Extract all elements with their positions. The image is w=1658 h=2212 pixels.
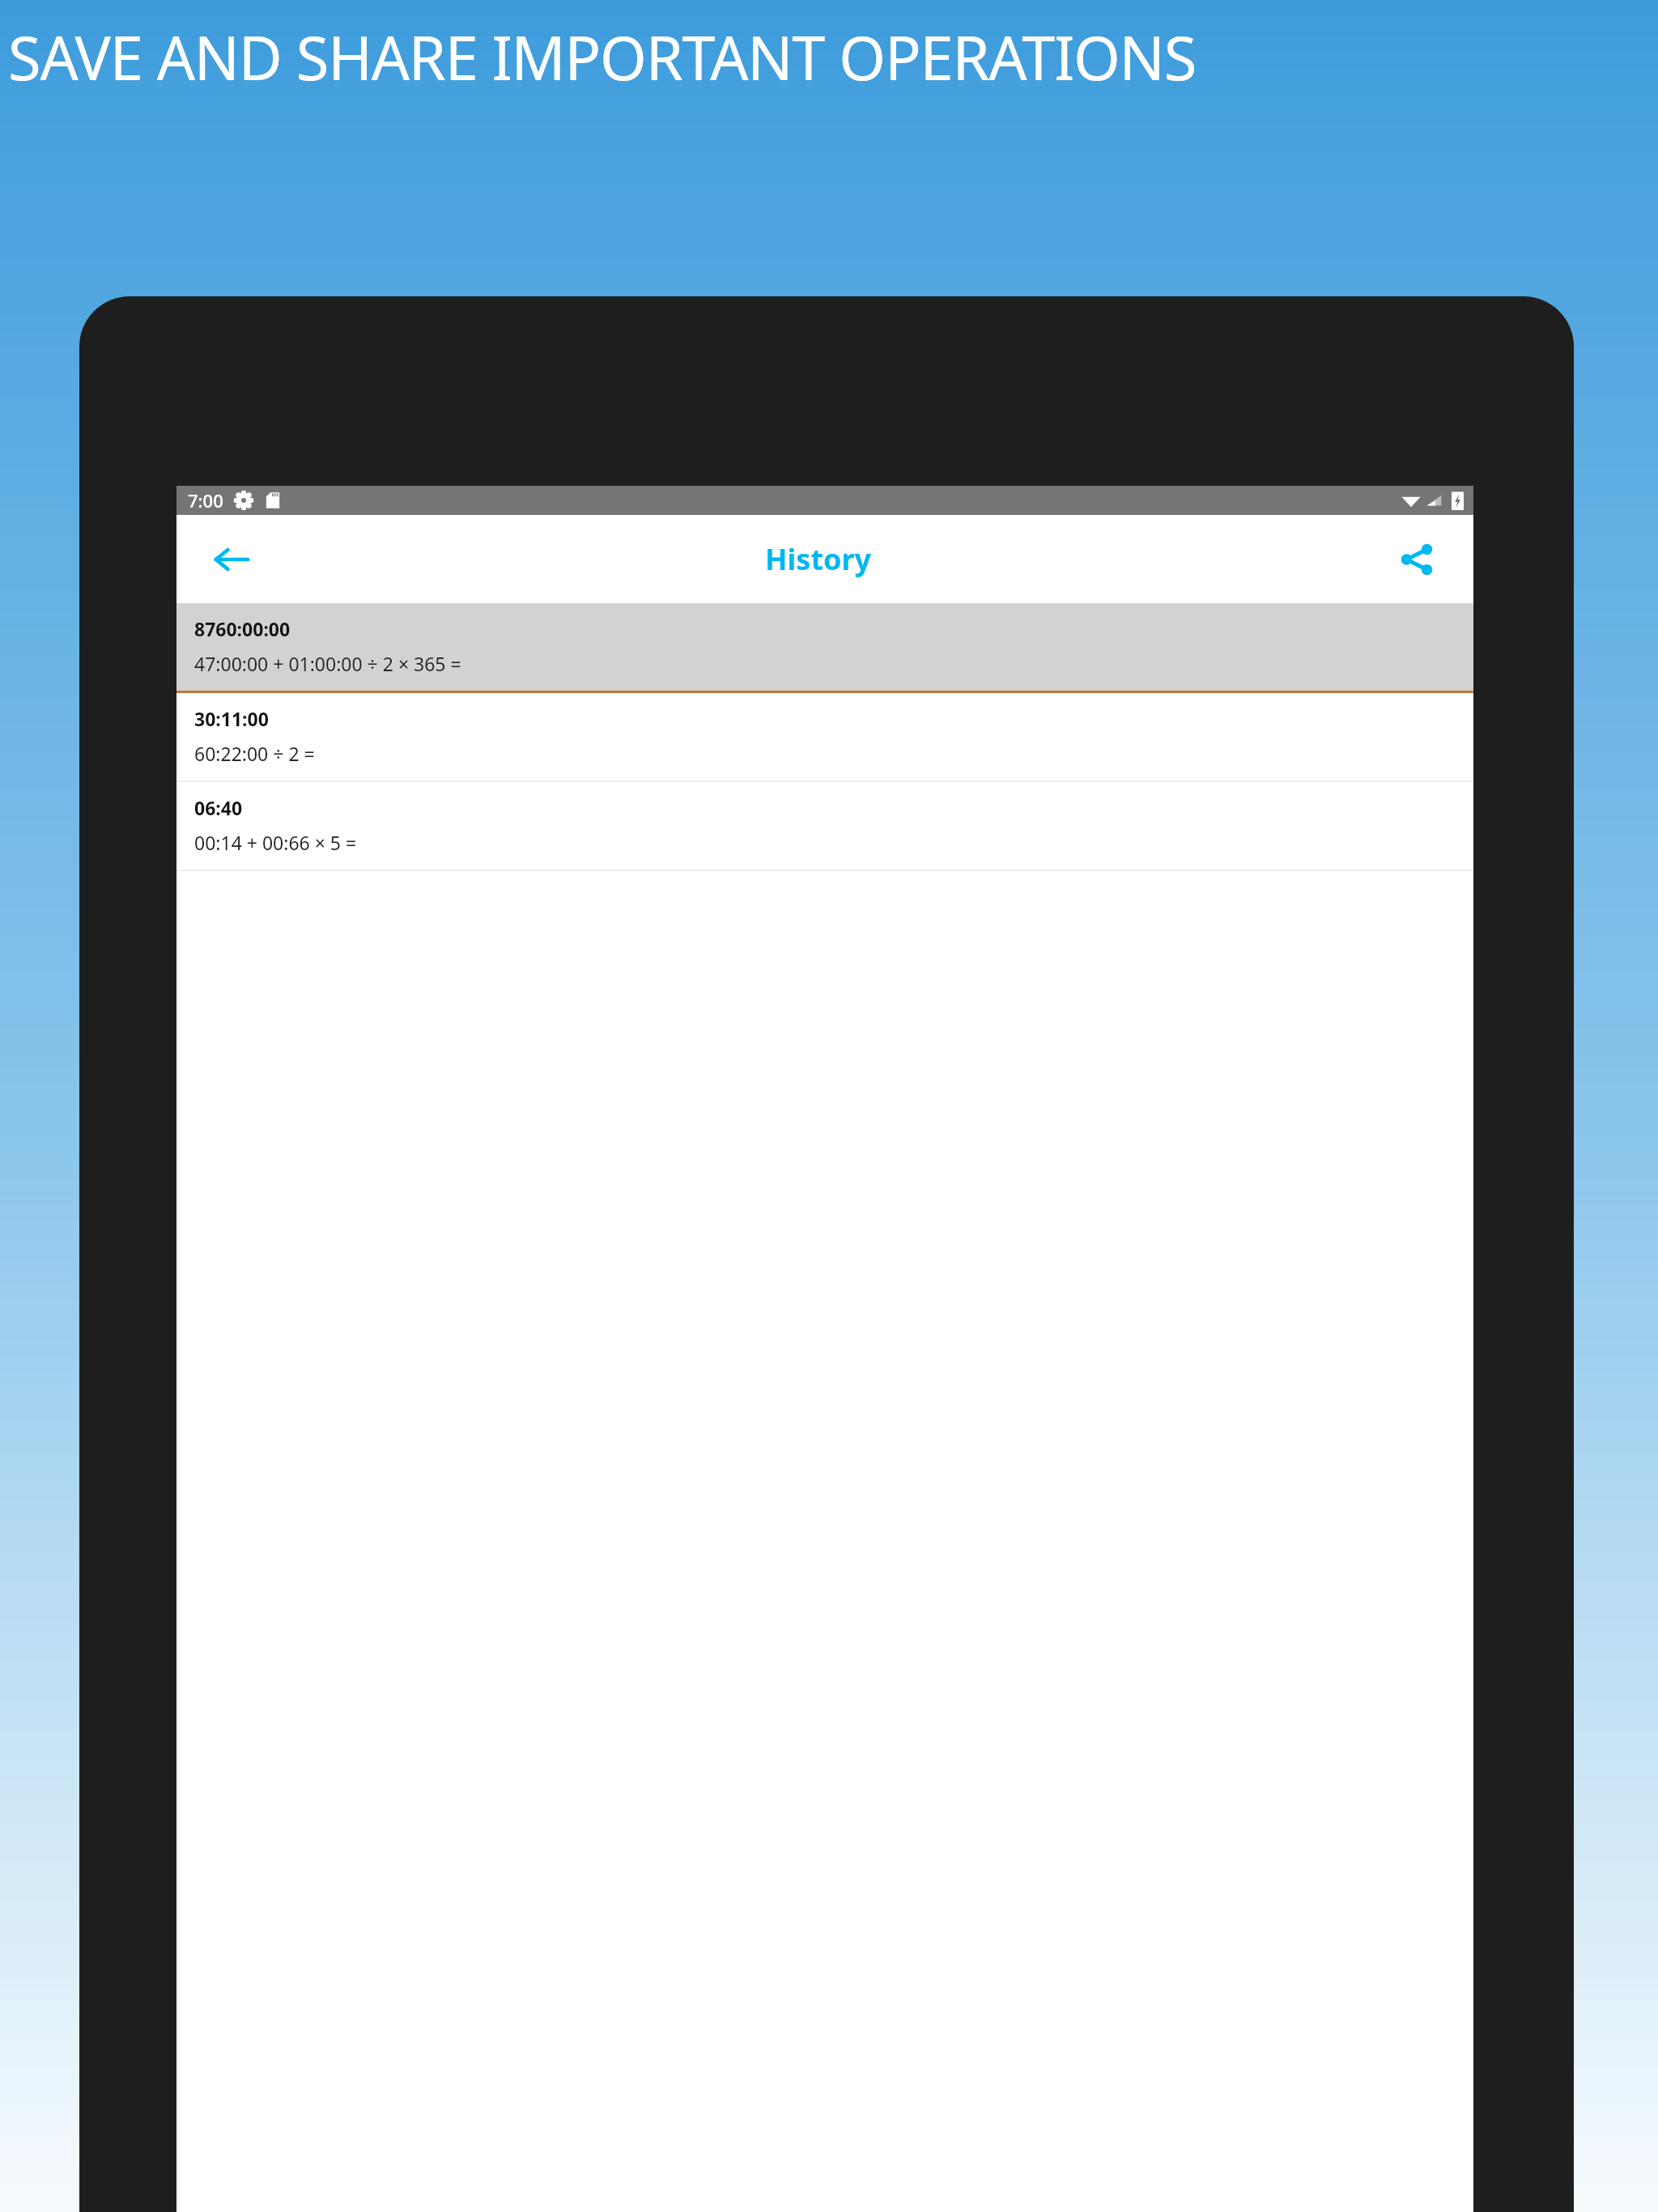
- staticText: 60:22:00 ÷ 2 =: [194, 741, 315, 766]
- staticText: 00:14 + 00:66 × 5 =: [194, 830, 357, 855]
- button[interactable]: Back: [191, 519, 272, 600]
- staticText: 30:11:00: [194, 706, 269, 731]
- button[interactable]: 30:11:00: [176, 693, 1473, 781]
- button[interactable]: Share: [1376, 519, 1457, 600]
- button[interactable]: 8760:00:00: [176, 603, 1473, 691]
- button[interactable]: 06:40: [176, 782, 1473, 870]
- staticText: 8760:00:00: [194, 616, 291, 641]
- staticText: 47:00:00 + 01:00:00 ÷ 2 × 365 =: [194, 651, 461, 676]
- staticText: 7:00: [188, 488, 223, 513]
- staticText: SAVE AND SHARE IMPORTANT OPERATIONS: [8, 16, 1197, 98]
- staticText: History: [765, 539, 872, 579]
- staticText: 06:40: [194, 795, 243, 820]
